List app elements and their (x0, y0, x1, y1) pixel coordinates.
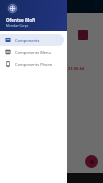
staticText: Components (15, 38, 40, 43)
staticText: Member Corps (6, 24, 29, 28)
button[interactable] (0, 0, 103, 183)
button[interactable]: Add (85, 155, 98, 168)
button[interactable]: Ofentse Mofi (0, 0, 67, 31)
staticText: Components Menu (15, 50, 51, 55)
button[interactable]: Components Menu (0, 46, 64, 58)
staticText: Components Phone (15, 62, 53, 67)
button[interactable]: Components Phone (0, 58, 64, 70)
staticText: Ofentse Mofi (6, 17, 36, 23)
staticText: 21:05:44 (68, 66, 84, 71)
button[interactable]: Components (0, 34, 64, 46)
button[interactable] (78, 30, 88, 40)
